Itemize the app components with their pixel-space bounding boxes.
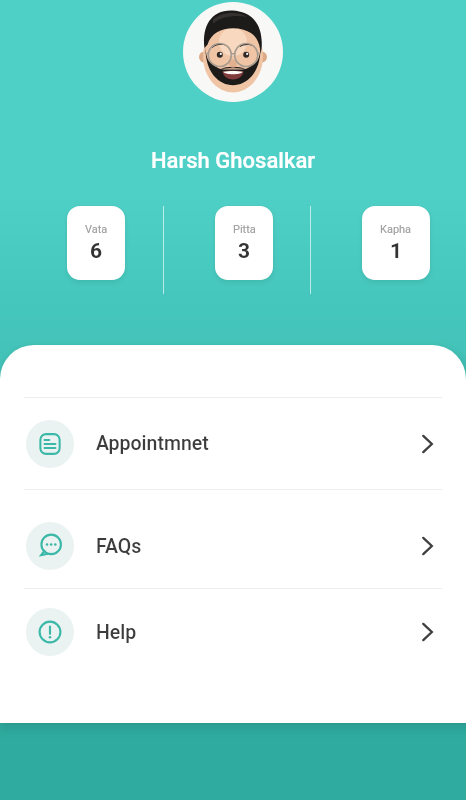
button[interactable]: Kapha <box>362 206 430 280</box>
staticText: Vata <box>85 223 108 236</box>
button[interactable]: Pitta <box>215 206 273 280</box>
staticText: Harsh Ghosalkar <box>0 148 466 174</box>
button[interactable]: FAQs <box>0 490 466 588</box>
staticText: 6 <box>90 239 103 264</box>
staticText: Kapha <box>380 223 412 236</box>
button[interactable]: Profile photo <box>183 2 283 102</box>
staticText: Appointmnet <box>96 432 209 455</box>
staticText: FAQs <box>96 535 142 558</box>
staticText: 1 <box>390 239 403 264</box>
staticText: Pitta <box>233 223 256 236</box>
staticText: 3 <box>238 239 251 264</box>
button[interactable]: Help <box>0 589 466 677</box>
other: Open FAQs <box>416 535 438 557</box>
other: Open Appointments <box>416 433 438 455</box>
button[interactable]: Appointmnet <box>0 398 466 489</box>
other: Open Help <box>416 621 438 643</box>
staticText: Help <box>96 621 137 644</box>
button[interactable]: Vata <box>67 206 125 280</box>
